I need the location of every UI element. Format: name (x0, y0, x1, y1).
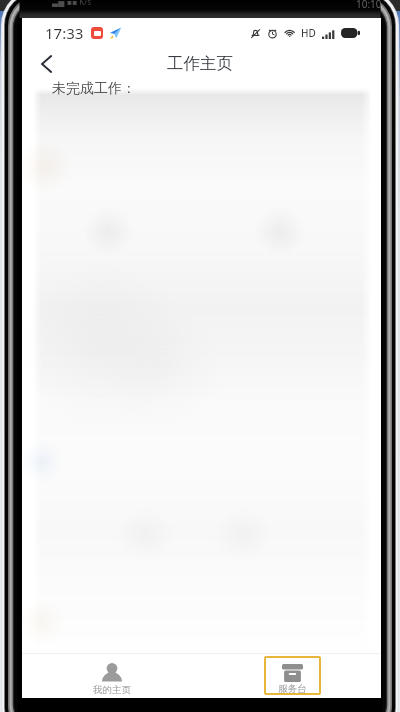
staticText: 10:10 (356, 0, 382, 11)
staticText: 服务台 (278, 683, 307, 695)
button[interactable]: Back (32, 50, 60, 78)
staticText: 未完成工作： (52, 80, 136, 98)
staticText: 工作主页 (167, 53, 233, 74)
staticText: HD (301, 26, 316, 40)
button[interactable]: 服务台 (264, 656, 321, 695)
button[interactable]: 我的主页 (78, 663, 146, 696)
staticText: 17:33 (45, 23, 84, 43)
staticText: 我的主页 (93, 684, 131, 696)
staticText: ▃▅ ▪▪ K/s (52, 0, 92, 7)
